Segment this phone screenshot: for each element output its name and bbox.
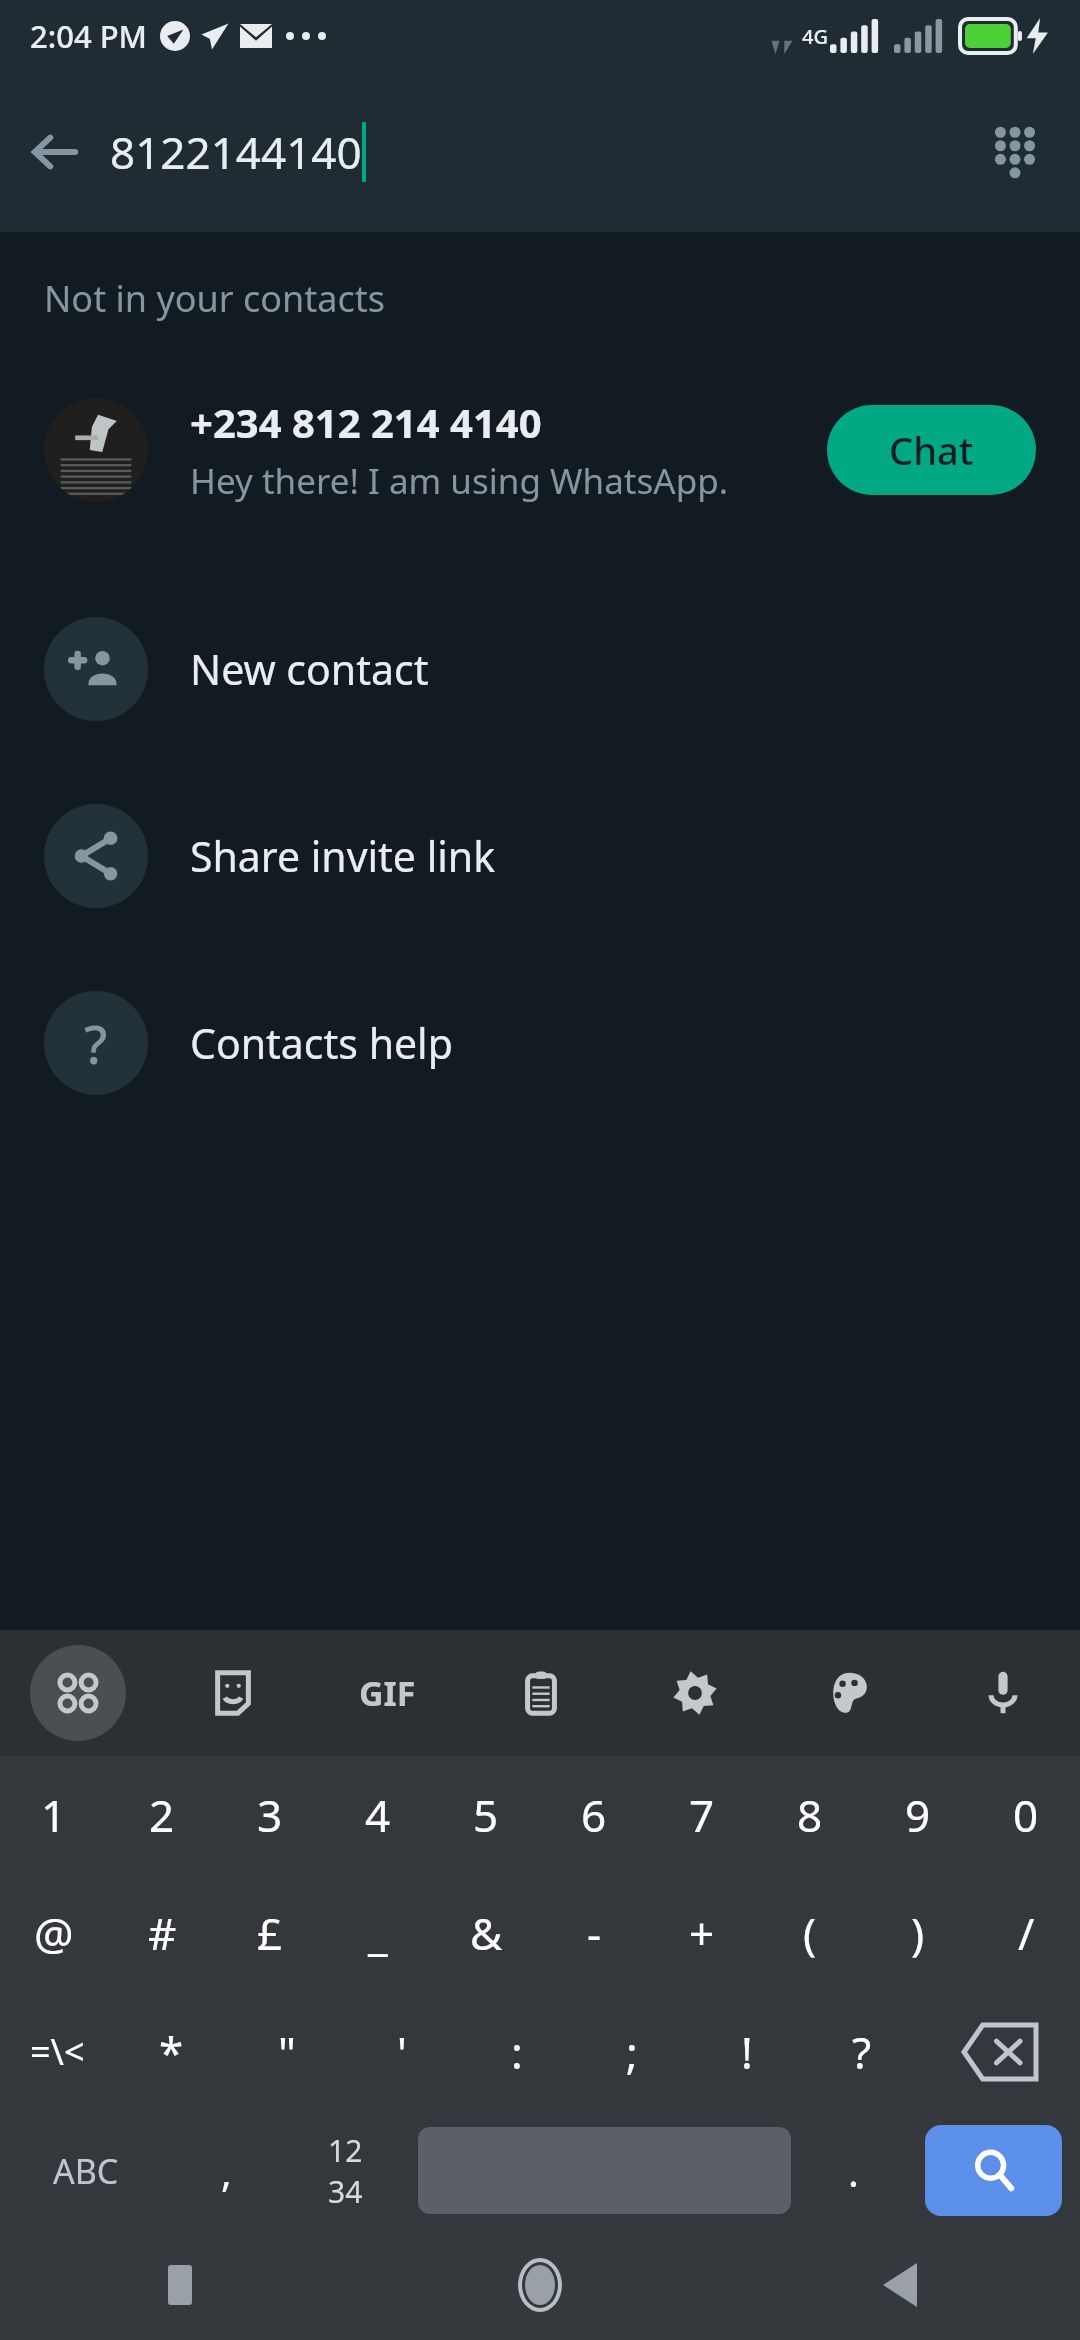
button[interactable]: ': [344, 1992, 459, 2111]
button[interactable]: Toolbox: [0, 1630, 155, 1756]
button[interactable]: ;: [574, 1992, 689, 2111]
button[interactable]: New contact: [0, 575, 1080, 762]
button[interactable]: 9: [864, 1756, 972, 1874]
staticText: 4: [365, 1785, 391, 1845]
button[interactable]: *: [114, 1992, 229, 2111]
staticText: !: [741, 2022, 753, 2082]
staticText: 34: [328, 2171, 363, 2212]
staticText: @: [34, 1903, 74, 1963]
button[interactable]: Search: [925, 2125, 1062, 2216]
button[interactable]: .: [799, 2111, 907, 2230]
button[interactable]: 0: [972, 1756, 1080, 1874]
staticText: -: [587, 1903, 602, 1963]
button[interactable]: ": [229, 1992, 344, 2111]
staticText: ?: [852, 2022, 872, 2082]
button[interactable]: +: [648, 1874, 756, 1992]
staticText: :: [511, 2022, 523, 2082]
button[interactable]: Share invite link: [0, 762, 1080, 949]
staticText: 8122144140: [110, 122, 362, 182]
staticText: (: [803, 1903, 817, 1963]
staticText: 9: [905, 1785, 931, 1845]
button[interactable]: Recents: [0, 2230, 360, 2340]
button[interactable]: 8: [756, 1756, 864, 1874]
staticText: +: [689, 1903, 715, 1963]
staticText: ): [911, 1903, 925, 1963]
button[interactable]: !: [689, 1992, 804, 2111]
button[interactable]: &: [432, 1874, 540, 1992]
staticText: ?: [84, 1008, 108, 1079]
button[interactable]: Numbers: [280, 2111, 410, 2230]
staticText: &: [470, 1903, 503, 1963]
button[interactable]: 4: [324, 1756, 432, 1874]
staticText: New contact: [190, 641, 429, 697]
staticText: #: [148, 1903, 177, 1963]
staticText: 2: [149, 1785, 175, 1845]
button[interactable]: ?: [0, 949, 1080, 1136]
button[interactable]: /: [972, 1874, 1080, 1992]
button[interactable]: Clipboard: [464, 1630, 618, 1756]
staticText: Chat: [889, 424, 974, 476]
staticText: ": [278, 2022, 296, 2082]
button[interactable]: :: [459, 1992, 574, 2111]
staticText: _: [368, 1903, 388, 1963]
staticText: .: [848, 2144, 859, 2198]
staticText: 5: [473, 1785, 499, 1845]
button[interactable]: Settings: [618, 1630, 772, 1756]
button[interactable]: 5: [432, 1756, 540, 1874]
button[interactable]: ,: [172, 2111, 280, 2230]
button[interactable]: Stickers: [155, 1630, 310, 1756]
button[interactable]: Themes: [772, 1630, 926, 1756]
staticText: ABC: [53, 2148, 119, 2194]
button[interactable]: 3: [216, 1756, 324, 1874]
button[interactable]: =\<: [0, 1992, 114, 2111]
staticText: 7: [689, 1785, 715, 1845]
staticText: 1: [41, 1785, 67, 1845]
staticText: Contacts help: [190, 1015, 453, 1071]
button[interactable]: (: [756, 1874, 864, 1992]
staticText: ;: [626, 2022, 638, 2082]
button[interactable]: Voice input: [926, 1630, 1080, 1756]
staticText: 8: [797, 1785, 823, 1845]
button[interactable]: Chat: [827, 405, 1036, 495]
button[interactable]: 7: [648, 1756, 756, 1874]
button[interactable]: _: [324, 1874, 432, 1992]
staticText: Share invite link: [190, 828, 496, 884]
button[interactable]: £: [216, 1874, 324, 1992]
staticText: /: [1018, 1903, 1035, 1963]
button[interactable]: -: [540, 1874, 648, 1992]
button[interactable]: 2: [108, 1756, 216, 1874]
staticText: GIF: [359, 1670, 416, 1716]
button[interactable]: @: [0, 1874, 108, 1992]
button[interactable]: 6: [540, 1756, 648, 1874]
button[interactable]: +234 812 214 4140: [0, 365, 1080, 535]
staticText: 6: [581, 1785, 607, 1845]
button[interactable]: 1: [0, 1756, 108, 1874]
button[interactable]: Back: [720, 2230, 1080, 2340]
button[interactable]: Home: [360, 2230, 720, 2340]
button[interactable]: Backspace: [919, 1992, 1080, 2111]
staticText: *: [159, 2022, 184, 2082]
staticText: 4G: [802, 23, 828, 50]
staticText: 12: [328, 2130, 363, 2171]
staticText: ': [397, 2022, 407, 2082]
button[interactable]: Back: [0, 97, 110, 207]
button[interactable]: ): [864, 1874, 972, 1992]
button[interactable]: GIF: [310, 1630, 464, 1756]
button[interactable]: #: [108, 1874, 216, 1992]
staticText: Not in your contacts: [44, 274, 386, 323]
button[interactable]: ABC: [0, 2111, 172, 2230]
staticText: 3: [257, 1785, 283, 1845]
staticText: ,: [221, 2144, 232, 2198]
staticText: £: [257, 1903, 283, 1963]
staticText: 2:04 PM: [30, 15, 148, 57]
staticText: 0: [1013, 1785, 1039, 1845]
staticText: Hey there! I am using WhatsApp.: [190, 457, 729, 505]
button[interactable]: ?: [804, 1992, 919, 2111]
staticText: =\<: [30, 2027, 85, 2076]
staticText: +234 812 214 4140: [190, 395, 542, 449]
button[interactable]: Dialpad: [960, 97, 1070, 207]
